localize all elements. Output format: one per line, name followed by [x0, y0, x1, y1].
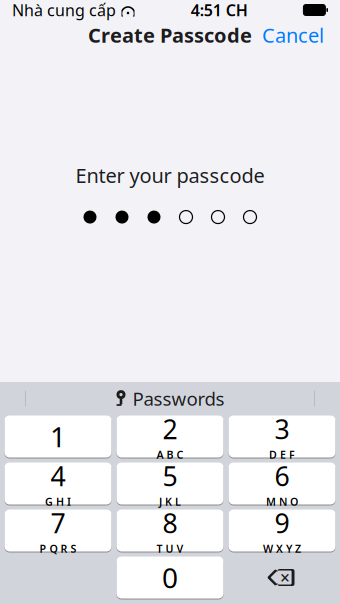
staticText: 3	[274, 411, 289, 447]
staticText: ×	[280, 566, 290, 589]
staticText: G H I	[45, 495, 71, 509]
button[interactable]: 6	[228, 462, 335, 505]
staticText: W X Y Z	[263, 542, 301, 556]
staticText: 0	[162, 559, 178, 596]
staticText: M N O	[266, 495, 298, 509]
staticText: A B C	[156, 448, 183, 462]
button[interactable]: Cancel	[252, 16, 334, 54]
button[interactable]: 2	[116, 415, 223, 458]
button[interactable]: 9	[228, 509, 335, 552]
staticText: J K L	[159, 495, 181, 509]
button[interactable]: 1	[4, 415, 111, 458]
staticText: P Q R S	[39, 542, 76, 556]
staticText: D E F	[269, 448, 295, 462]
staticText: Enter your passcode	[75, 162, 264, 189]
button[interactable]: 5	[116, 462, 223, 505]
staticText: 2	[162, 411, 177, 447]
button[interactable]: Passwords	[105, 382, 234, 415]
staticText: Create Passcode	[88, 22, 252, 48]
staticText: 6	[274, 458, 289, 494]
staticText: 5	[162, 458, 177, 494]
button[interactable]: 3	[228, 415, 335, 458]
staticText: 8	[162, 505, 177, 541]
button[interactable]: 8	[116, 509, 223, 552]
staticText: Passwords	[132, 386, 224, 411]
button[interactable]: 7	[4, 509, 111, 552]
staticText: 1	[50, 418, 66, 455]
button[interactable]: Delete	[228, 556, 335, 599]
staticText: T U V	[156, 542, 183, 556]
staticText: 9	[274, 505, 289, 541]
button[interactable]: 0	[116, 556, 223, 599]
staticText: Nhà cung cấp	[12, 0, 116, 21]
staticText: 4	[50, 458, 65, 494]
staticText: 4:51 CH	[191, 0, 248, 21]
staticText: 7	[50, 505, 65, 541]
button[interactable]: 4	[4, 462, 111, 505]
staticText: Cancel	[262, 22, 324, 48]
